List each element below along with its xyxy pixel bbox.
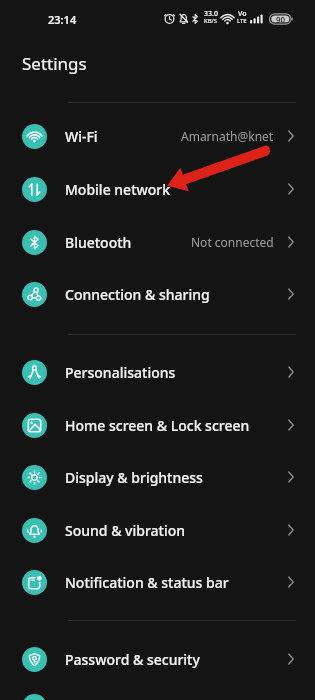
staticText: Not connected	[191, 234, 274, 250]
staticText: Password & security	[65, 650, 200, 669]
staticText: Notification & status bar	[65, 573, 229, 592]
staticText: Bluetooth	[65, 233, 132, 252]
button[interactable]: Notification & status bar	[0, 556, 315, 608]
staticText: Wi-Fi	[65, 127, 98, 146]
staticText: 33.0	[204, 9, 218, 19]
staticText: Display & brightness	[65, 468, 203, 487]
button[interactable]: Connection & sharing	[0, 268, 315, 320]
button[interactable]: Password & security	[0, 633, 315, 685]
staticText: 23:14	[48, 12, 77, 27]
staticText: Sound & vibration	[65, 521, 186, 540]
staticText: Settings	[22, 52, 87, 75]
staticText: 90	[276, 14, 286, 25]
staticText: LTE	[237, 17, 247, 25]
button[interactable]: Personalisations	[0, 346, 315, 398]
button[interactable]: Sound & vibration	[0, 504, 315, 556]
staticText: Connection & sharing	[65, 285, 210, 304]
button[interactable]: Bluetooth	[0, 216, 315, 268]
button[interactable]: Wi-Fi	[0, 110, 315, 162]
staticText: Mobile network	[65, 180, 171, 199]
staticText: Amarnath@knet	[181, 128, 274, 144]
staticText: KB/S	[204, 17, 218, 25]
staticText: Vo	[238, 9, 247, 19]
staticText: Home screen & Lock screen	[65, 416, 250, 435]
button[interactable]: Home screen & Lock screen	[0, 399, 315, 451]
button[interactable]: Display & brightness	[0, 451, 315, 503]
button[interactable]: Mobile network	[0, 163, 315, 215]
staticText: Personalisations	[65, 363, 176, 382]
